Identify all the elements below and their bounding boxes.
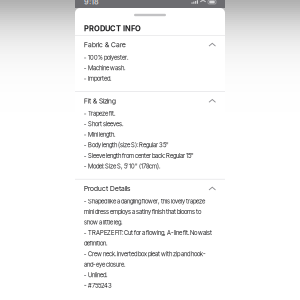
staticText: - TRAPEZE FIT: Cut for a flowing, A-line… (84, 229, 212, 237)
staticText: - Model: Size S, 5'10" (178cm). (84, 162, 160, 170)
staticText: and-eye closure. (84, 261, 125, 268)
staticText: - Body length (size S): Regular 35" (84, 141, 169, 149)
staticText: - #755243 (84, 282, 112, 289)
staticText: definition. (84, 240, 107, 247)
staticText: - Unlined. (84, 271, 107, 279)
staticText: 9:18 (84, 0, 99, 6)
staticText: Fit & Sizing (84, 97, 116, 105)
button[interactable]: Fit & Sizing (75, 92, 225, 110)
staticText: - Imported. (84, 75, 111, 82)
staticText: - Machine wash. (84, 64, 125, 72)
staticText: - Shaped like a dangling flower, this lo… (84, 198, 205, 205)
staticText: - Trapeze fit. (84, 110, 115, 117)
staticText: - Short sleeves. (84, 120, 123, 128)
staticText: mini dress employs a satiny finish that … (84, 208, 201, 215)
staticText: - 100% polyester. (84, 54, 128, 61)
staticText: PRODUCT INFO (84, 24, 141, 33)
button[interactable]: Product Details (75, 180, 225, 198)
staticText: - Crew neck. Inverted box pleat with zip… (84, 250, 206, 258)
staticText: Product Details (84, 184, 130, 193)
staticText: - Mini length. (84, 131, 115, 138)
staticText: - Sleeve length from center back: Regula… (84, 152, 194, 159)
staticText: Fabric & Care (84, 40, 126, 49)
button[interactable]: Fabric & Care (75, 36, 225, 54)
staticText: show a little leg. (84, 219, 122, 226)
